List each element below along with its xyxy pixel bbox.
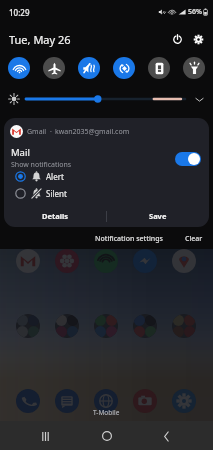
button[interactable]: Auto rotate xyxy=(113,57,135,79)
staticText: · xyxy=(50,127,52,137)
staticText: Clear xyxy=(185,234,203,244)
button[interactable]: Camera xyxy=(133,389,157,413)
button[interactable]: Settings xyxy=(172,389,196,413)
button[interactable]: Photos xyxy=(55,249,79,273)
button[interactable]: Details xyxy=(4,206,106,226)
staticText: kwan2035@gmail.com xyxy=(55,127,130,137)
staticText: T-Mobile xyxy=(93,408,120,417)
button[interactable]: Spotify xyxy=(94,249,118,273)
button[interactable]: Home xyxy=(94,423,120,449)
staticText: Details xyxy=(42,211,68,221)
button[interactable]: Expand quick settings xyxy=(192,92,207,107)
staticText: Notification settings xyxy=(95,234,163,244)
staticText: Mail xyxy=(11,146,30,159)
button[interactable]: Power xyxy=(167,29,187,49)
button[interactable]: Show notifications xyxy=(175,152,201,166)
staticText: Tue, May 26 xyxy=(9,32,71,47)
staticText: Alert xyxy=(46,171,64,182)
button[interactable]: Airplane mode xyxy=(43,57,65,79)
button[interactable]: Folder 1 xyxy=(16,314,40,338)
button[interactable]: Back xyxy=(153,423,179,449)
staticText: 56% xyxy=(188,7,202,17)
button[interactable]: Sound mode xyxy=(78,57,100,79)
button[interactable]: Wi-Fi xyxy=(8,57,30,79)
button[interactable]: Clear xyxy=(182,230,206,248)
button[interactable]: Phone xyxy=(16,389,40,413)
button[interactable]: Folder 5 xyxy=(172,314,196,338)
staticText: Silent xyxy=(46,188,67,199)
button[interactable]: Messages xyxy=(55,389,79,413)
staticText: Show notifications xyxy=(11,160,72,170)
staticText: Gmail xyxy=(27,127,47,137)
staticText: Save xyxy=(149,211,167,221)
button[interactable]: Messenger xyxy=(133,249,157,273)
button[interactable]: Folder 4 xyxy=(133,314,157,338)
button[interactable]: Settings xyxy=(188,29,208,49)
button[interactable]: Gmail xyxy=(16,249,40,273)
button[interactable]: Save xyxy=(107,206,209,226)
button[interactable]: Folder 2 xyxy=(55,314,79,338)
button[interactable]: Folder 3 xyxy=(94,314,118,338)
button[interactable]: Maps xyxy=(172,249,196,273)
button[interactable]: Bluetooth xyxy=(148,57,170,79)
button[interactable]: Internet xyxy=(94,389,118,413)
button[interactable]: Flashlight xyxy=(183,57,205,79)
button[interactable]: Notification settings xyxy=(92,230,166,248)
button[interactable]: Alert xyxy=(4,168,209,185)
button[interactable]: Recent apps xyxy=(32,423,58,449)
button[interactable]: Brightness xyxy=(25,95,185,103)
button[interactable]: Silent xyxy=(4,185,209,202)
staticText: 10:29 xyxy=(9,7,30,18)
